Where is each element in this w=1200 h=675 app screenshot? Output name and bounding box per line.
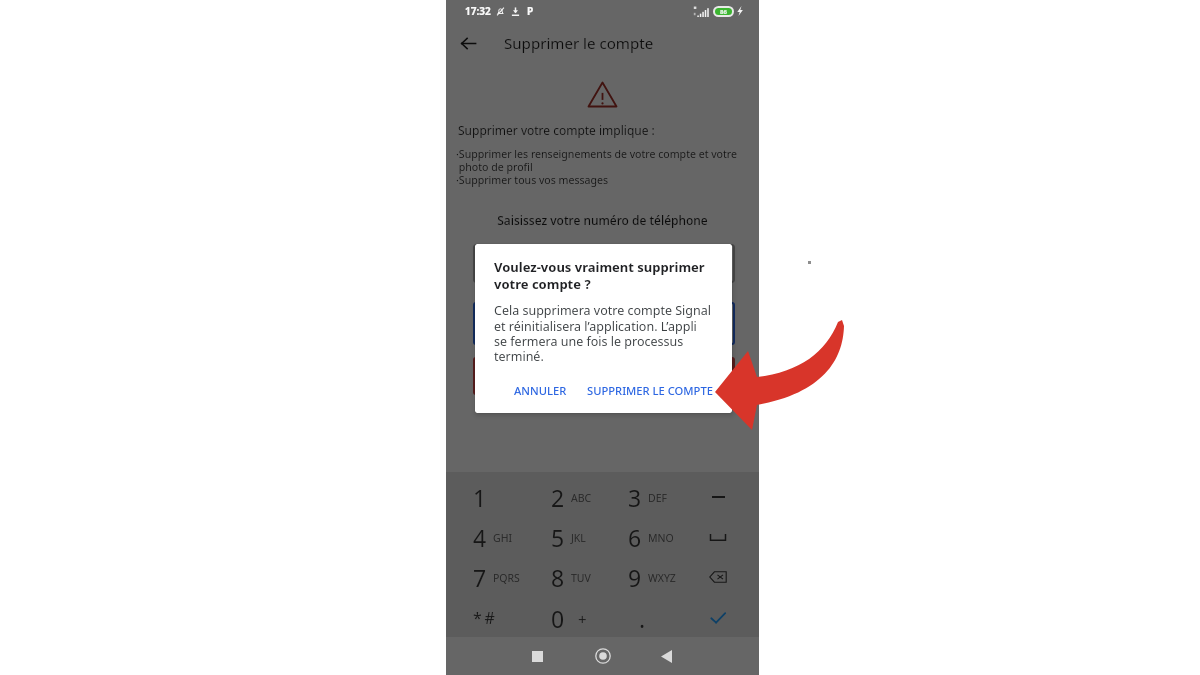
staticText: DEF [648, 491, 667, 505]
button[interactable] [473, 357, 735, 395]
staticText: ABC [571, 491, 592, 505]
staticText: Supprimer le compte [504, 33, 654, 54]
staticText: ·Supprimer les renseignements de votre c… [456, 147, 737, 187]
staticText: 4 [473, 522, 487, 553]
staticText: P [527, 4, 534, 18]
staticText: 5 [551, 522, 565, 553]
button[interactable]: 1 [451, 477, 529, 517]
button[interactable]: Done [698, 598, 738, 638]
staticText: 8 [551, 562, 565, 593]
staticText: WXYZ [648, 571, 676, 585]
staticText: PQRS [493, 571, 520, 585]
button[interactable] [473, 302, 735, 345]
staticText: 7 [473, 562, 487, 593]
staticText: Cela supprimera votre compte Signal et r… [494, 302, 711, 364]
button[interactable]: 7 [451, 557, 529, 597]
button[interactable]: . [617, 598, 695, 638]
staticText: * # [473, 607, 495, 629]
staticText: 17:32 [465, 4, 491, 18]
button[interactable]: SUPPRIMER LE COMPTE [579, 377, 721, 404]
button[interactable]: Space [698, 517, 738, 557]
staticText: 3 [628, 482, 642, 513]
staticText: 86 [720, 8, 727, 15]
staticText: JKL [571, 531, 586, 545]
staticText: 0 [551, 603, 565, 634]
button[interactable]: 8 [529, 557, 607, 597]
staticText: Supprimer votre compte implique : [458, 122, 655, 138]
button[interactable]: 5 [529, 517, 607, 557]
button[interactable]: Back [648, 637, 685, 675]
staticText: 9 [628, 562, 642, 593]
button[interactable]: Home [584, 637, 621, 675]
button[interactable]: 9 [606, 557, 684, 597]
staticText: 6 [628, 522, 642, 553]
staticText: SUPPRIMER LE COMPTE [587, 383, 713, 398]
staticText: 2 [551, 482, 565, 513]
button[interactable]: Dash [698, 477, 738, 517]
button[interactable]: 2 [529, 477, 607, 517]
button[interactable]: Recents [519, 637, 556, 675]
staticText: MNO [648, 531, 674, 545]
button[interactable]: Back [447, 22, 489, 64]
button[interactable]: * # [451, 598, 529, 638]
button[interactable]: ANNULER [506, 377, 575, 404]
staticText: TUV [571, 571, 591, 585]
button[interactable]: 3 [606, 477, 684, 517]
staticText: 1 [473, 482, 487, 513]
staticText: Voulez-vous vraiment supprimer votre com… [494, 258, 705, 293]
button[interactable]: Backspace [698, 557, 738, 597]
button[interactable]: 6 [606, 517, 684, 557]
button[interactable]: 0 [529, 598, 607, 638]
button[interactable]: 4 [451, 517, 529, 557]
staticText: ANNULER [514, 383, 567, 398]
button[interactable] [473, 244, 735, 283]
staticText: + [578, 609, 587, 629]
staticText: Saisissez votre numéro de téléphone [446, 212, 759, 228]
staticText: . [639, 603, 646, 634]
staticText: GHI [493, 531, 512, 545]
